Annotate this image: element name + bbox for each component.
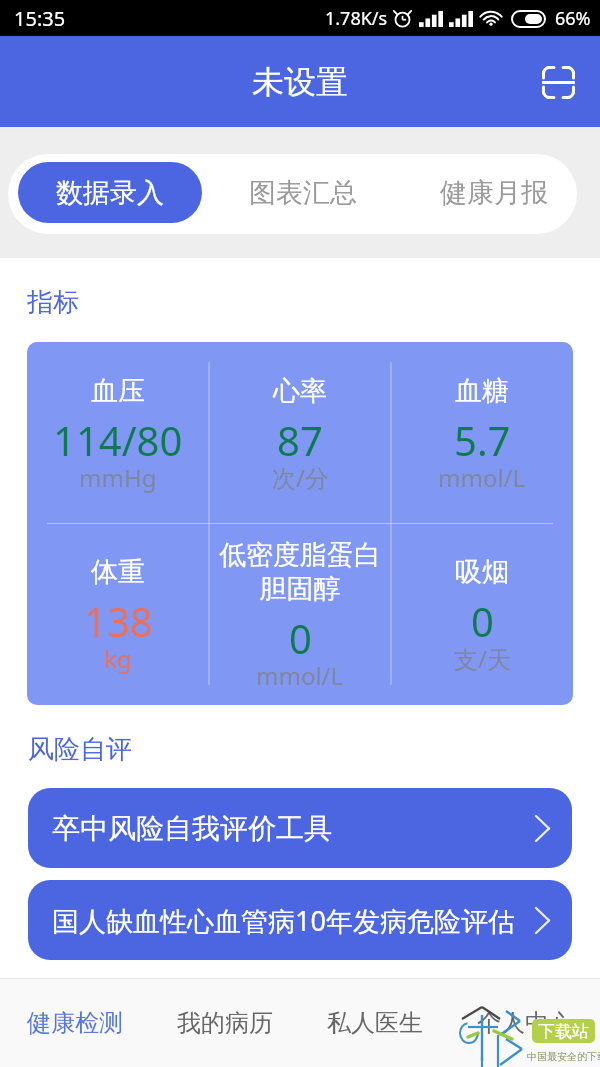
staticText: 次/分 [272,461,329,494]
button[interactable]: 个人中心 [450,979,600,1067]
staticText: 健康检测 [27,1008,123,1038]
staticText: mmol/L [256,659,344,692]
staticText: mmol/L [438,461,526,494]
staticText: 私人医生 [327,1008,423,1038]
staticText: 健康月报 [440,176,548,210]
staticText: 下载站 [538,1021,589,1042]
staticText: 138 [84,594,153,648]
button[interactable]: 卒中风险自我评价工具 [28,788,572,868]
button[interactable]: 健康检测 [0,979,150,1067]
staticText: 中国最安全的下载站 [527,1050,600,1063]
button[interactable]: 吸烟 [391,527,573,705]
staticText: 卒中风险自我评价工具 [52,811,332,846]
staticText: 指标 [27,286,79,319]
staticText: 血压 [91,374,145,408]
button[interactable]: 国人缺血性心血管病10年发病危险评估 [28,880,572,960]
staticText: kg [104,642,132,675]
staticText: 87 [277,413,323,467]
button[interactable]: 扫一扫 [532,56,584,108]
staticText: 图表汇总 [249,176,357,210]
staticText: 支/天 [454,642,511,675]
staticText: 数据录入 [56,176,164,210]
staticText: 0 [471,594,494,648]
button[interactable]: 体重 [27,527,209,705]
staticText: 未设置 [252,62,348,102]
staticText: 0 [289,611,312,665]
staticText: 15:35 [14,5,66,32]
button[interactable]: 我的病历 [150,979,300,1067]
staticText: 心率 [273,374,327,408]
staticText: 体重 [91,555,145,589]
staticText: 114/80 [53,413,183,467]
staticText: mmHg [79,461,157,494]
button[interactable]: 数据录入 [18,162,202,223]
button[interactable]: 私人医生 [300,979,450,1067]
button[interactable]: 图表汇总 [207,162,398,223]
staticText: 我的病历 [177,1008,273,1038]
staticText: 个人中心 [477,1008,573,1038]
button[interactable]: 健康月报 [398,162,589,223]
staticText: 吸烟 [455,555,509,589]
staticText: 1.78K/s [325,6,388,31]
button[interactable]: 血压 [27,346,209,527]
staticText: 66% [555,6,591,31]
button[interactable]: 心率 [209,346,391,527]
button[interactable]: 血糖 [391,346,573,527]
button[interactable]: 低密度脂蛋白 胆固醇 [209,527,391,705]
staticText: 风险自评 [28,733,132,766]
staticText: 国人缺血性心血管病10年发病危险评估 [52,902,515,939]
staticText: 低密度脂蛋白 胆固醇 [219,538,381,606]
staticText: 5.7 [454,413,511,467]
staticText: 血糖 [455,374,509,408]
